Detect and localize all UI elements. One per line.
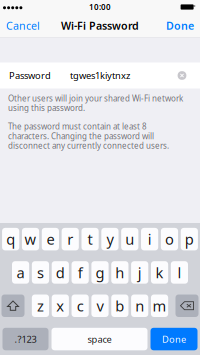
button[interactable]: z: [32, 294, 49, 317]
staticText: s: [37, 263, 44, 282]
staticText: .?123: [14, 333, 36, 345]
button[interactable]: j: [131, 261, 148, 284]
staticText: p: [185, 229, 194, 249]
staticText: l: [177, 263, 181, 282]
staticText: characters. Changing the password will: [8, 131, 154, 141]
button[interactable]: c: [71, 294, 89, 317]
button[interactable]: b: [111, 294, 128, 317]
staticText: z: [37, 296, 44, 315]
staticText: b: [115, 296, 124, 315]
staticText: x: [56, 296, 64, 315]
button[interactable]: w: [22, 228, 39, 250]
staticText: t: [88, 229, 93, 249]
staticText: h: [115, 263, 124, 282]
staticText: g: [95, 263, 104, 282]
button[interactable]: n: [131, 294, 148, 317]
button[interactable]: g: [91, 261, 109, 284]
staticText: space: [87, 333, 111, 345]
staticText: u: [125, 229, 134, 249]
staticText: e: [46, 229, 54, 249]
staticText: k: [155, 263, 163, 282]
button[interactable]: Done: [162, 14, 200, 37]
button[interactable]: p: [181, 228, 198, 250]
button[interactable]: r: [62, 228, 79, 250]
button[interactable]: Delete: [175, 294, 198, 317]
staticText: The password must contain at least 8: [8, 121, 147, 132]
staticText: Done: [166, 18, 194, 33]
staticText: using this password.: [8, 103, 85, 113]
button[interactable]: Clear text: [173, 66, 191, 84]
button[interactable]: a: [12, 261, 29, 284]
staticText: Password: [9, 69, 51, 82]
staticText: tgwes1kiytnxz: [70, 69, 130, 82]
button[interactable]: Shift: [1, 294, 24, 317]
button[interactable]: Done: [150, 328, 197, 350]
staticText: 10:00: [89, 2, 111, 12]
staticText: v: [96, 296, 103, 315]
staticText: y: [106, 229, 113, 249]
staticText: w: [24, 229, 36, 249]
button[interactable]: f: [72, 261, 89, 284]
button[interactable]: e: [42, 228, 59, 250]
staticText: m: [152, 296, 166, 315]
button[interactable]: .?123: [2, 328, 48, 350]
staticText: d: [56, 263, 65, 282]
staticText: r: [67, 229, 73, 249]
staticText: Other users will join your shared Wi-Fi …: [8, 93, 183, 104]
staticText: disconnect any currently connected users…: [8, 140, 169, 151]
staticText: n: [135, 296, 144, 315]
staticText: q: [6, 229, 15, 249]
button[interactable]: l: [171, 261, 188, 284]
button[interactable]: t: [81, 228, 99, 250]
button[interactable]: u: [121, 228, 138, 250]
staticText: Done: [162, 333, 186, 345]
button[interactable]: i: [141, 228, 158, 250]
staticText: Cancel: [6, 18, 40, 33]
staticText: j: [138, 263, 142, 282]
button[interactable]: Cancel: [0, 14, 44, 37]
button[interactable]: v: [91, 294, 109, 317]
button[interactable]: q: [2, 228, 19, 250]
button[interactable]: k: [151, 261, 168, 284]
button[interactable]: h: [111, 261, 128, 284]
button[interactable]: y: [101, 228, 118, 250]
button[interactable]: s: [32, 261, 49, 284]
staticText: f: [78, 263, 83, 282]
button[interactable]: o: [161, 228, 178, 250]
button[interactable]: x: [52, 294, 69, 317]
staticText: Wi-Fi Password: [61, 18, 139, 33]
staticText: a: [17, 263, 25, 282]
button[interactable]: m: [151, 294, 168, 317]
staticText: i: [148, 229, 152, 249]
staticText: o: [165, 229, 174, 249]
button[interactable]: d: [52, 261, 69, 284]
button[interactable]: space: [51, 328, 147, 350]
staticText: c: [77, 296, 84, 315]
